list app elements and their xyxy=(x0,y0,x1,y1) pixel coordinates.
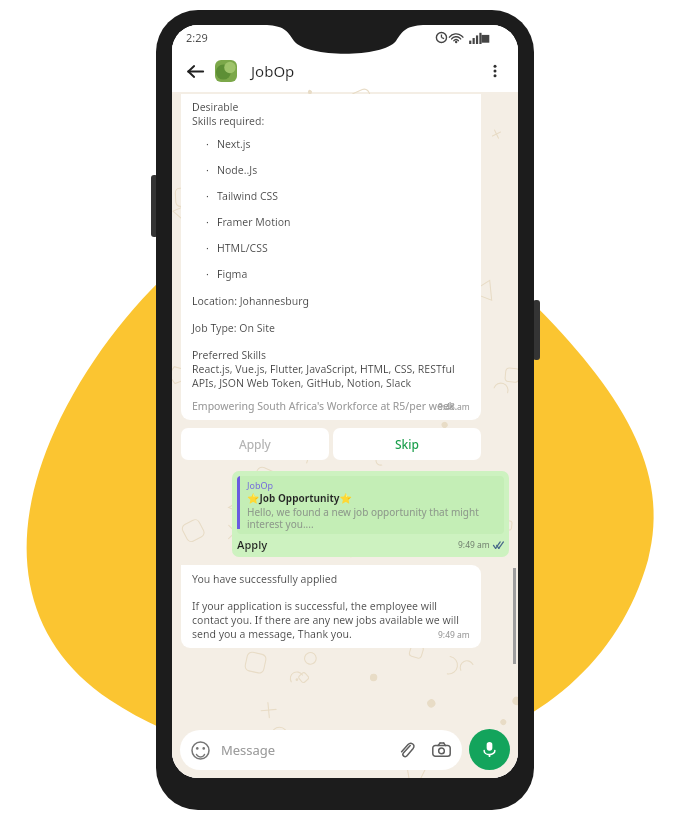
button[interactable]: Attach xyxy=(398,741,416,759)
staticText: Node..Js xyxy=(217,163,258,177)
staticText: · xyxy=(206,267,209,281)
staticText: Message xyxy=(221,741,276,759)
staticText: Framer Motion xyxy=(217,215,291,229)
staticText: Preferred Skills React.js, Vue.js, Flutt… xyxy=(192,348,470,390)
button[interactable]: Emoji xyxy=(180,730,462,770)
staticText: HTML/CSS xyxy=(217,241,268,255)
button[interactable]: Camera xyxy=(432,741,451,760)
other: Emoji xyxy=(191,741,210,760)
button[interactable]: Back xyxy=(182,58,208,84)
staticText: JobOp xyxy=(247,479,274,491)
staticText: If your application is successful, the e… xyxy=(192,599,470,641)
staticText: 9:49 am xyxy=(438,629,470,641)
staticText: Apply xyxy=(239,436,271,452)
staticText: 2:29 xyxy=(186,30,208,45)
staticText: Figma xyxy=(217,267,248,281)
staticText: JobOp xyxy=(251,61,295,81)
staticText: 9:49 am xyxy=(458,539,490,551)
button[interactable]: You have successfully applied xyxy=(181,565,481,648)
staticText: Location: Johannesburg xyxy=(192,294,309,308)
button[interactable]: Skip xyxy=(333,428,481,460)
staticText: · xyxy=(206,215,209,229)
staticText: ⭐Job Opportunity⭐ xyxy=(247,491,353,505)
staticText: · xyxy=(206,137,209,151)
staticText: · xyxy=(206,189,209,203)
staticText: Skip xyxy=(395,436,419,452)
staticText: · xyxy=(206,163,209,177)
staticText: Desirable Skills required: xyxy=(192,100,265,128)
button[interactable]: JobOp xyxy=(232,471,509,557)
staticText: Empowering South Africa's Workforce at R… xyxy=(192,399,458,413)
button[interactable]: Apply xyxy=(181,428,329,460)
staticText: Job Type: On Site xyxy=(192,321,275,335)
staticText: You have successfully applied xyxy=(192,572,338,586)
button[interactable]: Voice message xyxy=(469,729,510,770)
staticText: · xyxy=(206,241,209,255)
button[interactable]: Desirable Skills required: xyxy=(181,94,481,420)
staticText: Tailwind CSS xyxy=(217,189,279,203)
button[interactable]: More options xyxy=(482,58,508,84)
staticText: 9:48 am xyxy=(438,401,470,413)
staticText: Next.js xyxy=(217,137,251,151)
staticText: Apply xyxy=(237,537,268,552)
staticText: Hello, we found a new job opportunity th… xyxy=(247,505,504,531)
